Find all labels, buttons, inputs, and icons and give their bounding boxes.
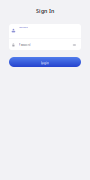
staticText: Login	[41, 61, 49, 65]
staticText: Username	[19, 26, 28, 29]
staticText: Password	[19, 43, 31, 47]
button[interactable]: Show password	[72, 43, 77, 47]
button[interactable]: Login	[9, 57, 81, 67]
staticText: Sign In	[36, 7, 54, 15]
